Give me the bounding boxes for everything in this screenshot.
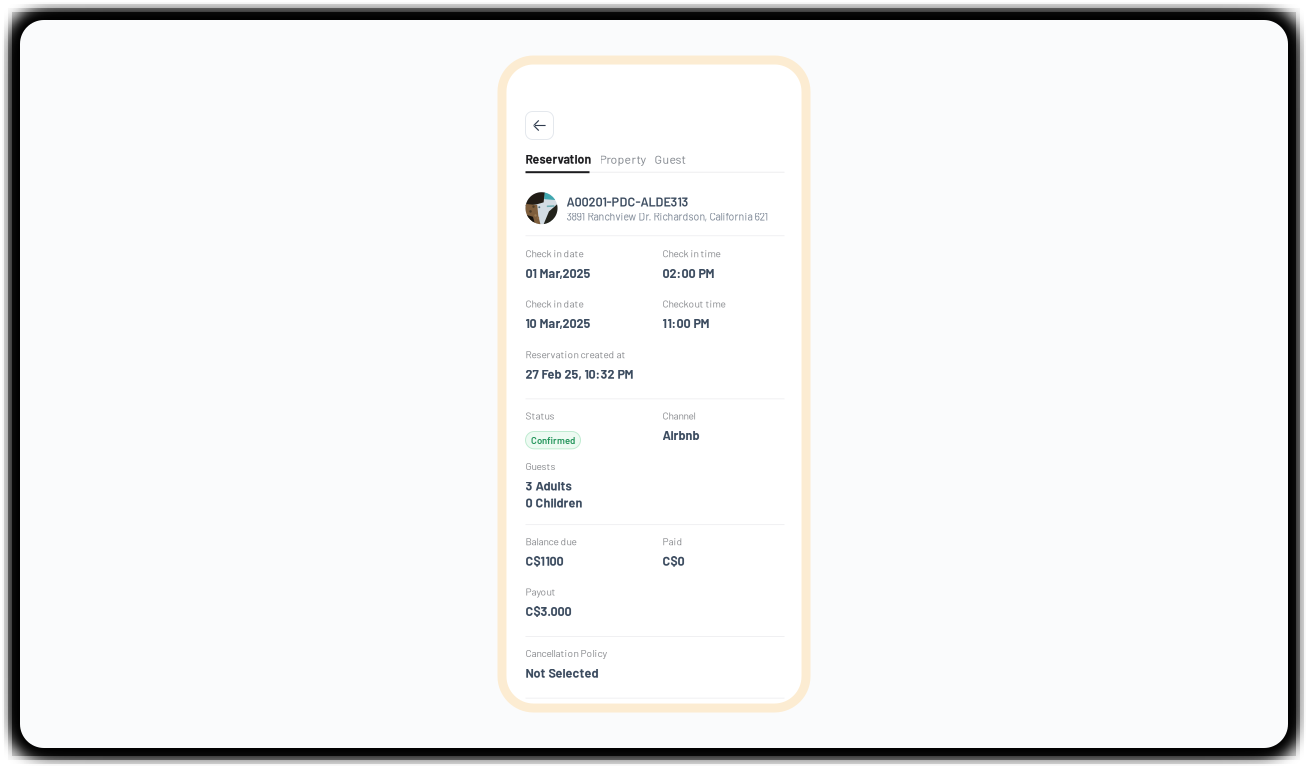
staticText: Guests xyxy=(525,460,555,472)
staticText: 3 Adults xyxy=(525,478,571,493)
staticText: Reservation created at xyxy=(525,348,625,360)
button[interactable]: A00201-PDC-ALDE313 xyxy=(525,192,784,224)
staticText: C$0 xyxy=(662,553,684,568)
staticText: 27 Feb 25, 10:32 PM xyxy=(525,366,633,381)
staticText: Checkout time xyxy=(662,297,725,310)
staticText: Status xyxy=(525,409,554,421)
staticText: 02:00 PM xyxy=(662,265,714,280)
staticText: 11:00 PM xyxy=(662,316,709,331)
staticText: Reservation xyxy=(525,151,591,166)
staticText: Not Selected xyxy=(525,665,598,680)
staticText: C$3.000 xyxy=(525,603,571,618)
staticText: 10 Mar,2025 xyxy=(525,316,590,331)
staticText: A00201-PDC-ALDE313 xyxy=(566,194,688,209)
button[interactable]: Guest xyxy=(654,151,685,166)
staticText: Confirmed xyxy=(531,434,575,446)
staticText: Airbnb xyxy=(662,427,699,442)
staticText: Check in date xyxy=(525,297,583,310)
staticText: Check in date xyxy=(525,247,583,259)
staticText: Guest xyxy=(654,151,685,166)
staticText: 01 Mar,2025 xyxy=(525,265,590,280)
staticText: 3891 Ranchview Dr. Richardson, Californi… xyxy=(566,210,768,223)
button[interactable]: Reservation xyxy=(525,151,591,166)
staticText: Property xyxy=(599,151,646,166)
staticText: Balance due xyxy=(525,535,576,547)
button[interactable]: Back xyxy=(525,111,553,139)
staticText: Cancellation Policy xyxy=(525,647,607,659)
staticText: Payout xyxy=(525,585,555,597)
staticText: 0 Children xyxy=(525,495,582,510)
staticText: Paid xyxy=(662,535,682,547)
staticText: Channel xyxy=(662,409,695,421)
button[interactable]: Property xyxy=(599,151,646,166)
staticText: Check in time xyxy=(662,247,720,259)
staticText: C$1100 xyxy=(525,553,563,568)
